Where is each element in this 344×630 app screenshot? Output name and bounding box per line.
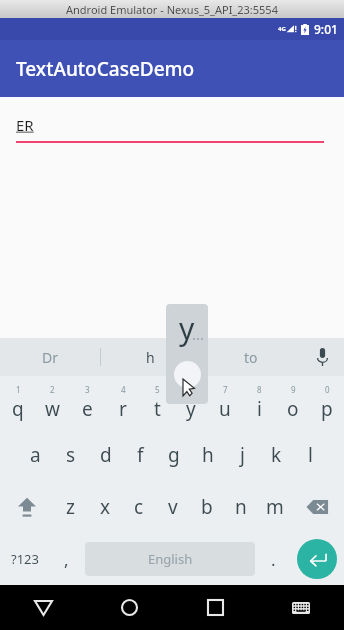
staticText: k — [271, 442, 282, 468]
staticText: a — [30, 442, 41, 468]
button[interactable]: Backspace — [292, 481, 344, 533]
button[interactable]: Recents — [172, 585, 258, 630]
staticText: q — [12, 396, 24, 422]
other: y key preview — [166, 304, 208, 404]
staticText: l — [308, 442, 313, 468]
staticText: . — [271, 548, 276, 571]
button[interactable]: h — [191, 429, 225, 481]
button[interactable]: 1 — [0, 376, 35, 429]
staticText: n — [235, 494, 247, 520]
button[interactable]: 7 — [208, 376, 242, 429]
button[interactable]: 8 — [242, 376, 276, 429]
staticText: 4G — [278, 25, 286, 33]
staticText: t — [154, 396, 161, 422]
button[interactable]: ?123 — [0, 533, 50, 585]
button[interactable]: Back — [0, 585, 86, 630]
button[interactable]: Dr — [0, 338, 100, 376]
button[interactable]: h — [101, 338, 200, 376]
staticText: 4 — [121, 384, 126, 395]
button[interactable]: g — [157, 429, 191, 481]
staticText: o — [287, 396, 299, 422]
button[interactable]: Voice input — [300, 338, 344, 376]
staticText: 9 — [291, 384, 296, 395]
staticText: to — [244, 348, 258, 367]
button[interactable]: c — [122, 481, 156, 533]
button[interactable]: v — [156, 481, 190, 533]
staticText: 7 — [223, 384, 228, 395]
button[interactable]: f — [123, 429, 157, 481]
staticText: 6 — [189, 384, 194, 395]
staticText: 0 — [325, 384, 330, 395]
button[interactable]: b — [190, 481, 224, 533]
staticText: y — [186, 396, 196, 422]
button[interactable]: d — [88, 429, 123, 481]
staticText: h — [202, 442, 214, 468]
staticText: Dr — [42, 348, 59, 367]
button[interactable]: 6 — [174, 376, 208, 429]
staticText: b — [201, 494, 213, 520]
staticText: 3 — [85, 384, 90, 395]
staticText: s — [66, 442, 76, 468]
button[interactable]: k — [259, 429, 293, 481]
button[interactable]: to — [201, 338, 300, 376]
staticText: w — [45, 396, 60, 422]
staticText: g — [168, 442, 180, 468]
staticText: ER — [16, 115, 34, 135]
staticText: 2 — [50, 384, 55, 395]
button[interactable]: n — [224, 481, 258, 533]
staticText: ?123 — [11, 550, 39, 568]
button[interactable]: 5 — [140, 376, 174, 429]
staticText: p — [321, 396, 333, 422]
staticText: j — [240, 442, 245, 468]
staticText: 9:01 — [314, 21, 338, 37]
button[interactable]: Home — [86, 585, 172, 630]
button[interactable]: 9 — [276, 376, 310, 429]
button[interactable]: English — [85, 542, 255, 576]
staticText: c — [134, 494, 144, 520]
staticText: 5 — [155, 384, 160, 395]
button[interactable]: m — [258, 481, 292, 533]
button[interactable]: a — [18, 429, 53, 481]
staticText: e — [82, 396, 93, 422]
staticText: v — [168, 494, 178, 520]
button[interactable]: x — [88, 481, 122, 533]
staticText: h — [146, 348, 155, 367]
button[interactable]: . — [257, 533, 290, 585]
button[interactable]: 3 — [70, 376, 105, 429]
staticText: Android Emulator - Nexus_5_API_23:5554 — [66, 2, 278, 17]
staticText: x — [100, 494, 111, 520]
staticText: 8 — [257, 384, 262, 395]
button[interactable]: Shift — [0, 481, 53, 533]
button[interactable]: 4 — [105, 376, 140, 429]
staticText: English — [148, 550, 193, 568]
staticText: u — [219, 396, 231, 422]
button[interactable]: j — [225, 429, 259, 481]
button[interactable]: z — [53, 481, 88, 533]
staticText: z — [66, 494, 75, 520]
staticText: y — [179, 308, 195, 349]
staticText: f — [137, 442, 144, 468]
button[interactable]: l — [293, 429, 327, 481]
staticText: TextAutoCaseDemo — [16, 56, 195, 82]
button[interactable]: 0 — [310, 376, 344, 429]
staticText: 1 — [16, 384, 21, 395]
staticText: m — [266, 494, 284, 520]
button[interactable]: s — [53, 429, 88, 481]
staticText: d — [100, 442, 112, 468]
staticText: , — [64, 548, 69, 571]
button[interactable]: , — [50, 533, 83, 585]
button[interactable]: 2 — [35, 376, 70, 429]
staticText: r — [119, 396, 127, 422]
button[interactable]: Enter — [290, 533, 344, 585]
button[interactable]: Change keyboard — [258, 585, 344, 630]
staticText: i — [257, 396, 262, 422]
